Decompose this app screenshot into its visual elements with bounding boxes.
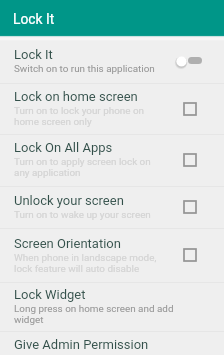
button[interactable]: Enable option	[172, 191, 212, 223]
button[interactable]: Screen Orientation	[0, 228, 224, 282]
staticText: home screen only	[14, 116, 92, 128]
staticText: Switch on to run this application	[14, 63, 155, 75]
staticText: Lock It	[13, 11, 55, 27]
button[interactable]: Enable option	[172, 239, 212, 271]
button[interactable]: Lock on home screen	[0, 83, 224, 134]
button[interactable]: Lock It	[0, 0, 224, 36]
staticText: Give Admin Permission	[14, 337, 149, 352]
staticText: Screen Orientation	[14, 236, 121, 251]
staticText: Lock Widget	[14, 287, 86, 302]
staticText: Turn on to apply screen lock on	[14, 156, 151, 168]
staticText: any application	[14, 167, 81, 179]
button[interactable]: Toggle lock service on	[172, 44, 216, 76]
staticText: Turn on to lock your phone on	[14, 105, 145, 117]
staticText: Lock on home screen	[14, 89, 138, 104]
button[interactable]: Enable option	[172, 93, 212, 125]
staticText: Long press on home screen and add	[14, 303, 174, 315]
button[interactable]: Enable option	[172, 144, 212, 176]
staticText: When phone in landscape mode,	[14, 252, 157, 264]
button[interactable]: Give Admin Permission	[0, 331, 224, 355]
staticText: Turn on to wake up your screen	[14, 209, 151, 221]
button[interactable]: Lock On All Apps	[0, 134, 224, 186]
button[interactable]: Lock It	[0, 36, 224, 83]
staticText: Lock On All Apps	[14, 140, 113, 155]
button[interactable]: Unlock your screen	[0, 186, 224, 228]
staticText: Unlock your screen	[14, 193, 124, 208]
button[interactable]: Lock Widget	[0, 282, 224, 331]
staticText: widget	[14, 314, 44, 326]
staticText: Lock It	[14, 47, 53, 62]
staticText: lock feature will auto disable	[14, 263, 140, 275]
